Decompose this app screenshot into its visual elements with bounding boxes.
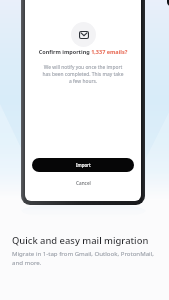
button[interactable]: Cancel — [33, 172, 133, 193]
staticText: Quick and easy mail migration — [12, 234, 149, 247]
staticText: Import — [76, 162, 91, 168]
staticText: Confirm importing 1,337 emails? — [27, 48, 139, 55]
staticText: Migrate in 1-tap from Gmail, Outlook, Pr… — [12, 249, 160, 267]
staticText: Cancel — [76, 180, 91, 186]
button[interactable]: Import — [32, 158, 134, 172]
staticText: We will notify you once the import has b… — [42, 64, 124, 85]
